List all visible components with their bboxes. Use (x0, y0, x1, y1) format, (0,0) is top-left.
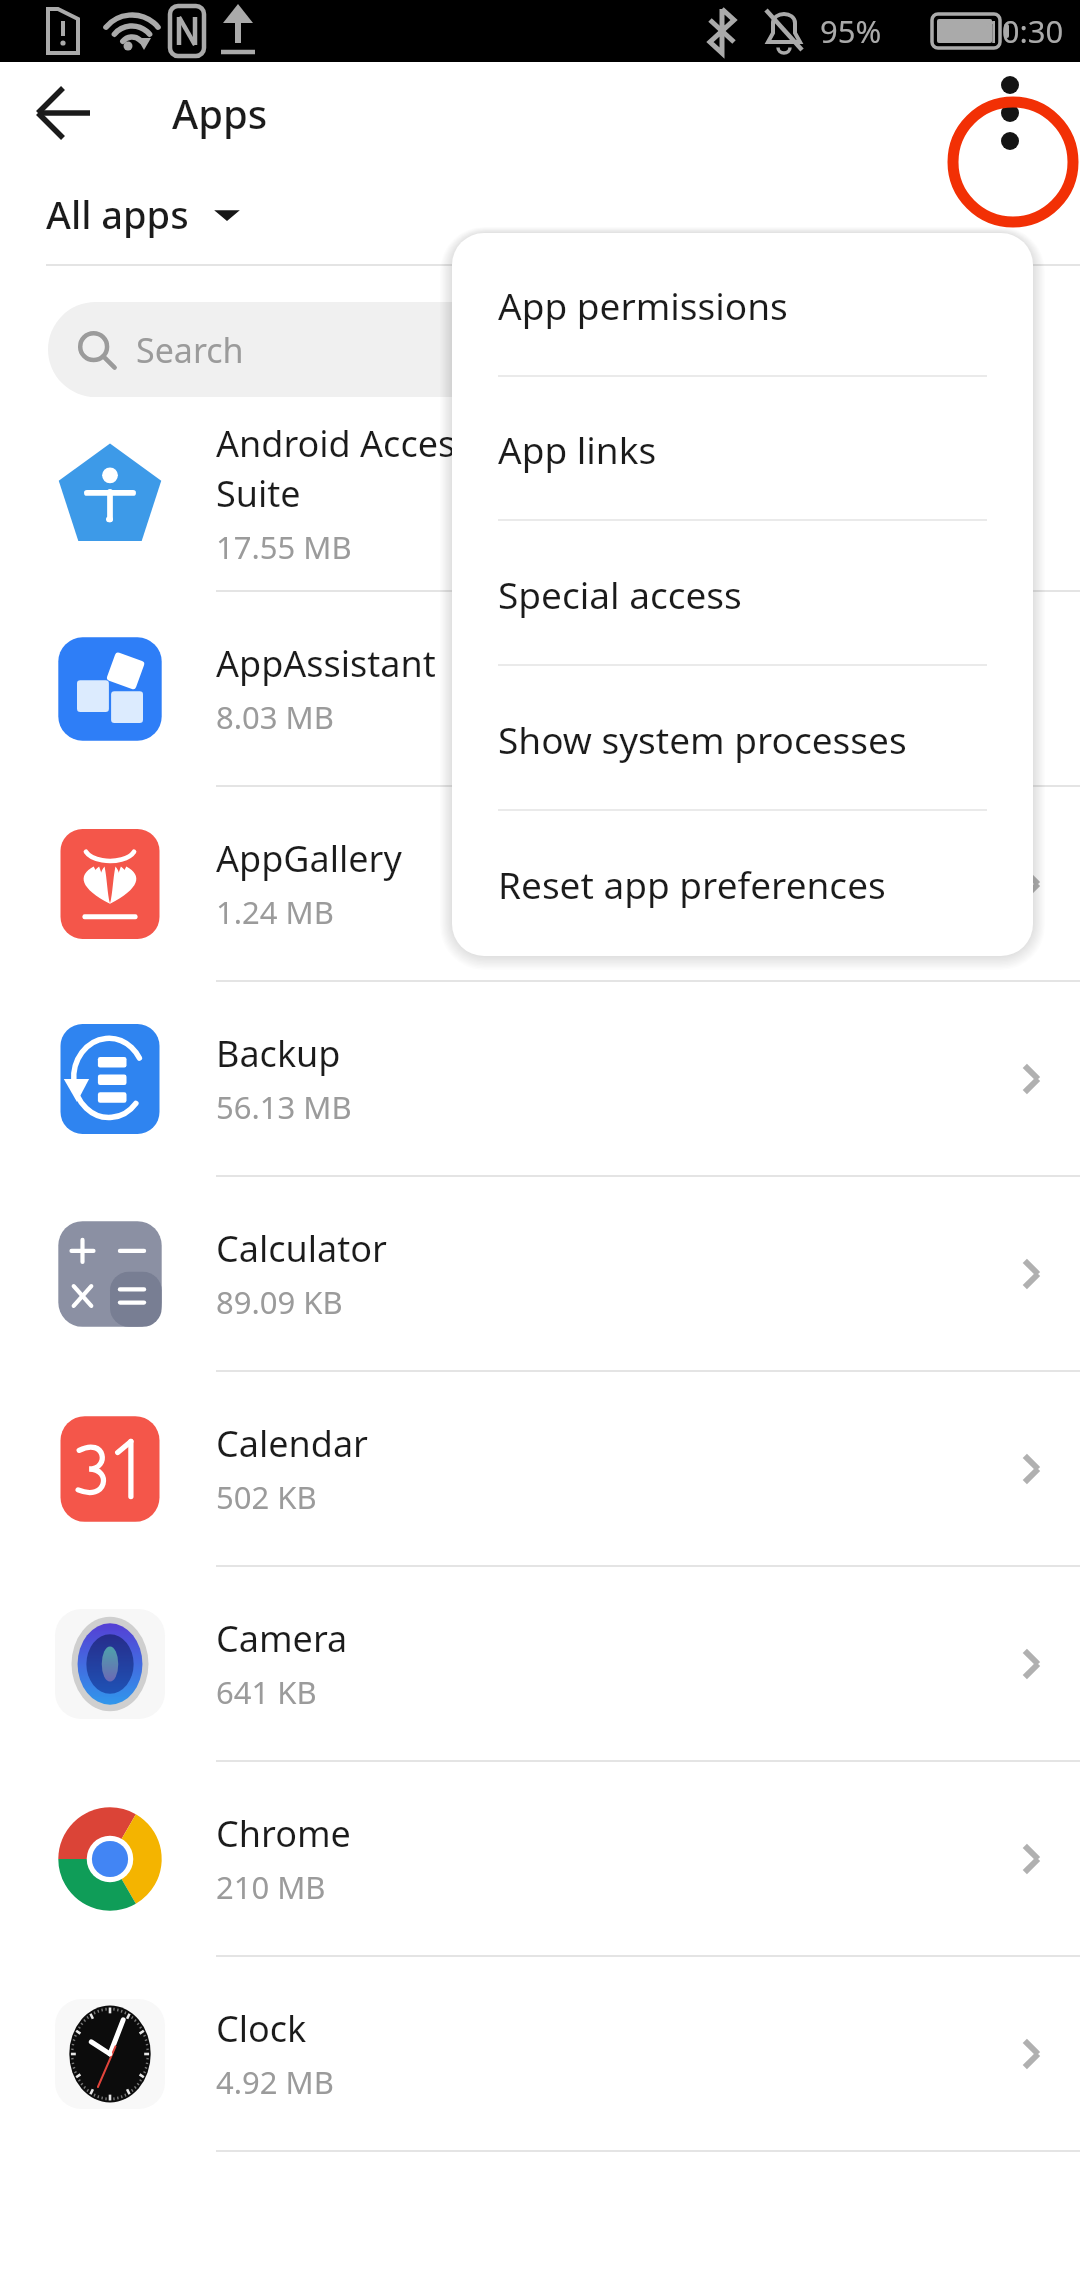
staticText: Reset app preferences (498, 859, 886, 909)
staticText: Show system processes (498, 714, 907, 764)
button[interactable]: More options (973, 76, 1047, 150)
staticText: 56.13 MB (216, 1086, 352, 1128)
button[interactable]: Calendar (0, 1372, 1080, 1567)
staticText: Apps (172, 86, 268, 140)
button[interactable]: AppGallery (0, 787, 1080, 982)
staticText: All apps (46, 188, 189, 240)
staticText: 502 KB (216, 1476, 317, 1518)
button[interactable]: Backup (0, 982, 1080, 1177)
button[interactable]: Chrome (0, 1762, 1080, 1957)
staticText: 210 MB (216, 1866, 326, 1908)
staticText: 641 KB (216, 1671, 317, 1713)
staticText: 17.55 MB (216, 526, 352, 568)
staticText: App links (498, 424, 657, 474)
staticText: Backup (216, 1029, 341, 1078)
button[interactable]: All apps (46, 164, 243, 264)
staticText: Search (136, 327, 244, 373)
staticText: 89.09 KB (216, 1281, 343, 1323)
staticText: App permissions (498, 280, 788, 330)
button[interactable]: Back (28, 77, 100, 149)
button[interactable]: Show system processes (452, 666, 1033, 811)
button[interactable]: App links (452, 377, 1033, 521)
staticText: Special access (498, 569, 742, 619)
button[interactable]: App permissions (452, 233, 1033, 377)
staticText: 4.92 MB (216, 2061, 334, 2103)
staticText: 8.03 MB (216, 696, 334, 738)
button[interactable]: Clock (0, 1957, 1080, 2152)
staticText: Calendar (216, 1419, 368, 1468)
button[interactable]: Search (48, 302, 1032, 397)
staticText: 95% (820, 10, 882, 52)
staticText: Calculator (216, 1224, 387, 1273)
staticText: AppAssistant (216, 639, 436, 688)
staticText: Camera (216, 1614, 348, 1663)
button[interactable]: Camera (0, 1567, 1080, 1762)
staticText: AppGallery (216, 834, 402, 883)
staticText: Android Accessibility Suite (216, 419, 564, 518)
button[interactable]: Reset app preferences (452, 811, 1033, 956)
button[interactable]: Special access (452, 521, 1033, 666)
staticText: Clock (216, 2004, 307, 2053)
button[interactable]: Calculator (0, 1177, 1080, 1372)
button[interactable]: Android Accessibility Suite (0, 397, 1080, 592)
staticText: Chrome (216, 1809, 351, 1858)
staticText: 1.24 MB (216, 891, 334, 933)
button[interactable]: AppAssistant (0, 592, 1080, 787)
staticText: 10:30 (984, 10, 1064, 52)
